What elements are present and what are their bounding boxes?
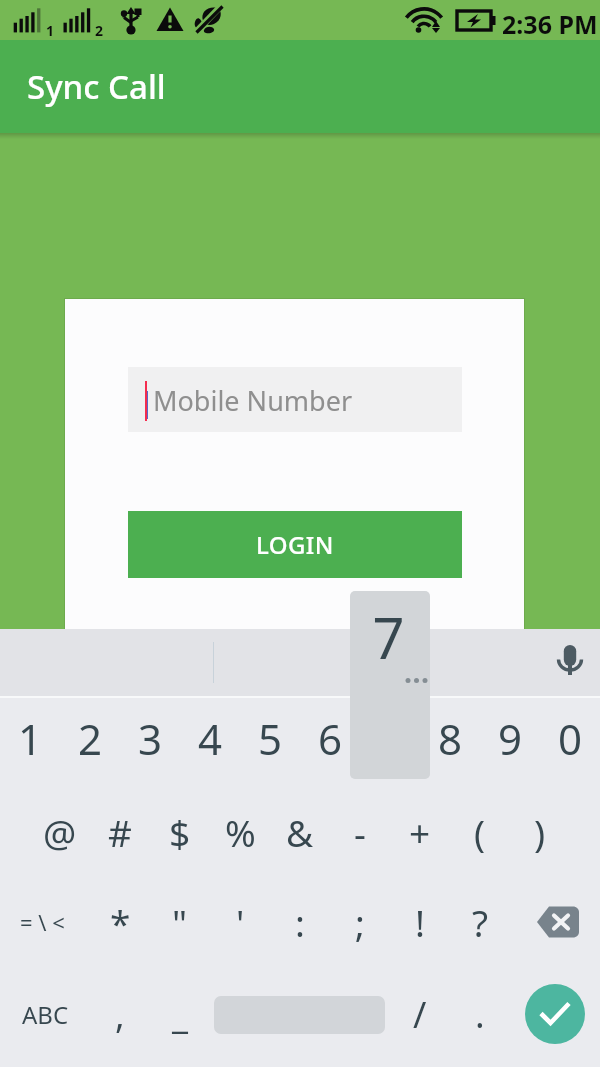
button[interactable]: @ [30,788,90,876]
button[interactable]: 1 [0,695,60,781]
staticText: Mobile Number [153,382,353,419]
button[interactable]: ABC [0,968,90,1060]
button[interactable]: ; [330,878,390,966]
staticText: - [354,807,366,857]
button[interactable]: , [90,968,150,1060]
staticText: : [295,897,305,947]
staticText: 1 [18,710,43,767]
staticText: 7 [372,599,405,675]
staticText: / [413,990,427,1039]
button[interactable]: $ [150,788,210,876]
button[interactable]: Mobile Number [128,367,462,432]
button[interactable]: # [90,788,150,876]
staticText: 8 [438,710,463,767]
staticText: ' [236,897,245,947]
button[interactable]: _ [150,968,210,1060]
button[interactable]: = \ < [0,878,84,966]
staticText: 3 [138,710,163,767]
button[interactable]: * [90,878,150,966]
button[interactable]: + [390,788,450,876]
staticText: ABC [22,998,69,1031]
staticText: = \ < [20,907,65,937]
button[interactable]: Voice input [540,629,600,696]
staticText: _ [172,990,188,1039]
button[interactable]: 8 [420,695,480,781]
button[interactable]: ( [450,788,510,876]
staticText: 2 [78,710,103,767]
button[interactable]: ! [390,878,450,966]
staticText: 2:36 PM [502,7,598,41]
button[interactable]: ? [450,878,510,966]
staticText: + [409,807,431,857]
staticText: 4 [198,710,223,767]
button[interactable]: Enter [525,984,585,1044]
button[interactable]: 2 [60,695,120,781]
staticText: 1 [46,21,55,40]
button[interactable]: ) [510,788,570,876]
staticText: @ [43,807,77,857]
button[interactable]: " [150,878,210,966]
button[interactable]: LOGIN [128,511,462,578]
staticText: 6 [318,710,343,767]
staticText: . [475,990,485,1039]
button[interactable]: . [450,968,510,1060]
staticText: Sync Call [27,64,166,109]
staticText: 2 [95,21,104,40]
button[interactable]: 0 [540,695,600,781]
button[interactable]: 6 [300,695,360,781]
button[interactable]: : [270,878,330,966]
staticText: ; [355,897,365,947]
button[interactable]: 4 [180,695,240,781]
staticText: " [172,897,188,947]
button[interactable]: % [210,788,270,876]
staticText: LOGIN [256,528,334,561]
button[interactable]: 7 [360,695,420,781]
staticText: % [225,807,256,857]
staticText: ? [472,897,489,947]
staticText: $ [169,807,191,857]
staticText: 0 [558,710,583,767]
staticText: 5 [258,710,283,767]
button[interactable]: 9 [480,695,540,781]
button[interactable]: / [390,968,450,1060]
staticText: , [115,990,125,1039]
staticText: & [286,807,314,857]
staticText: 9 [498,710,523,767]
button[interactable]: ' [210,878,270,966]
button[interactable]: 5 [240,695,300,781]
staticText: * [110,897,131,947]
staticText: # [108,807,132,857]
staticText: ! [415,897,425,947]
staticText: ) [534,807,546,857]
button[interactable]: - [330,788,390,876]
button[interactable]: Backspace [520,878,595,966]
button[interactable]: & [270,788,330,876]
button[interactable]: 3 [120,695,180,781]
staticText: ( [474,807,486,857]
